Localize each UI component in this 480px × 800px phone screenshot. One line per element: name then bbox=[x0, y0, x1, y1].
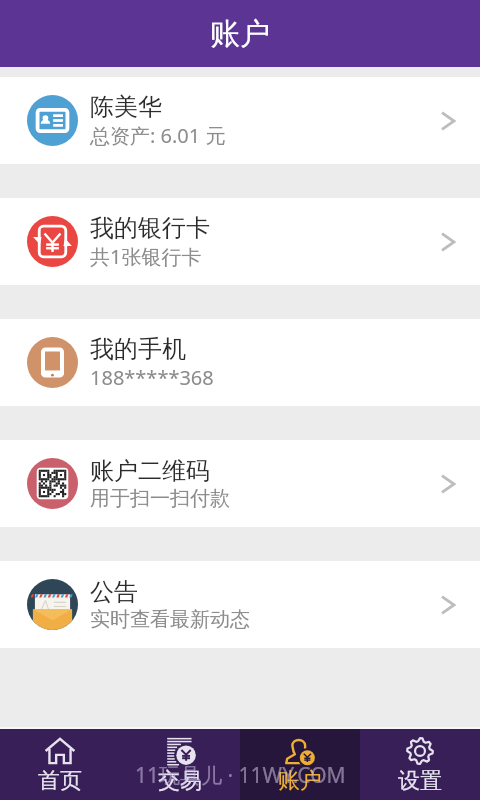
staticText: 实时查看最新动态 bbox=[90, 607, 250, 632]
button[interactable]: 公告 bbox=[0, 561, 480, 648]
other: 交易 bbox=[164, 735, 196, 767]
staticText: 账户 bbox=[210, 15, 270, 53]
button[interactable]: 陈美华 bbox=[0, 77, 480, 164]
button[interactable]: 设置 bbox=[360, 729, 480, 800]
staticText: 陈美华 bbox=[90, 92, 162, 122]
button[interactable]: 账户 bbox=[240, 729, 360, 800]
other: 首页 bbox=[44, 735, 76, 767]
staticText: 交易 bbox=[158, 767, 202, 795]
button[interactable]: 首页 bbox=[0, 729, 120, 800]
staticText: 首页 bbox=[38, 767, 82, 795]
staticText: 共1张银行卡 bbox=[90, 243, 202, 270]
other: 账户 bbox=[284, 735, 316, 767]
staticText: 账户 bbox=[278, 767, 322, 795]
staticText: 我的银行卡 bbox=[90, 213, 210, 243]
staticText: 11玩具儿 · 11WY.COM bbox=[135, 761, 346, 790]
other: 设置 bbox=[404, 735, 436, 767]
staticText: 我的手机 bbox=[90, 334, 186, 364]
staticText: 总资产: 6.01 元 bbox=[90, 122, 226, 149]
staticText: 账户二维码 bbox=[90, 456, 210, 486]
button[interactable]: 交易 bbox=[120, 729, 240, 800]
button[interactable]: 我的手机 bbox=[0, 319, 480, 406]
staticText: 用于扫一扫付款 bbox=[90, 486, 230, 511]
staticText: 188*****368 bbox=[90, 364, 214, 391]
staticText: 设置 bbox=[398, 767, 442, 795]
button[interactable]: 我的银行卡 bbox=[0, 198, 480, 285]
button[interactable]: 账户二维码 bbox=[0, 440, 480, 527]
staticText: 公告 bbox=[90, 577, 138, 607]
